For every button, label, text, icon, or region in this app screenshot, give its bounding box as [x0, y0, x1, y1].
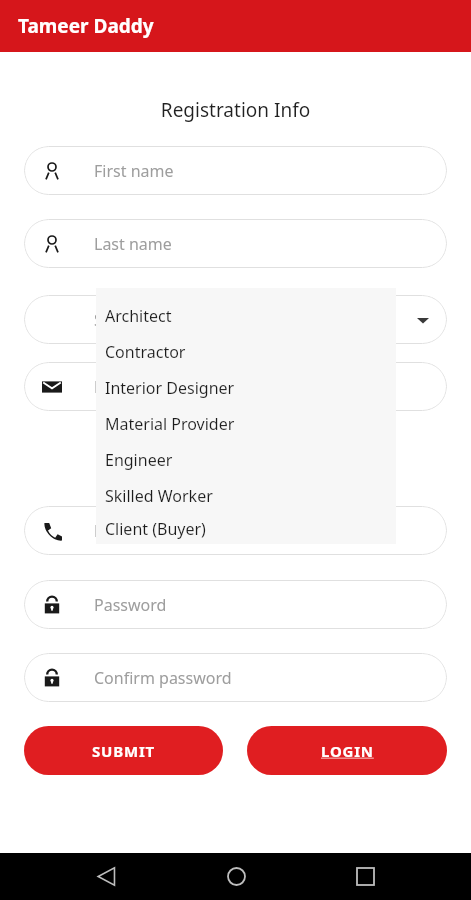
button[interactable]: SUBMIT [24, 726, 223, 775]
button[interactable]: Client (Buyer) [96, 514, 396, 544]
staticText: Phone [94, 520, 429, 542]
button[interactable]: Architect [96, 298, 396, 334]
button[interactable]: Email [24, 362, 447, 411]
staticText: Skilled Worker [105, 485, 213, 507]
staticText: Contractor [105, 341, 186, 363]
staticText: Architect [105, 305, 172, 327]
button[interactable]: Confirm password [24, 653, 447, 702]
button[interactable]: Home [212, 853, 260, 900]
button[interactable]: Back [82, 853, 130, 900]
button[interactable]: Material Provider [96, 406, 396, 442]
staticText: SUBMIT [92, 741, 156, 761]
staticText: Material Provider [105, 413, 235, 435]
button[interactable]: Contractor [96, 334, 396, 370]
staticText: LOGIN [321, 741, 374, 761]
staticText: Engineer [105, 449, 173, 471]
button[interactable]: First name [24, 146, 447, 195]
staticText: Tameer Daddy [18, 13, 154, 39]
staticText: Client (Buyer) [105, 518, 206, 540]
staticText: Email [94, 376, 429, 398]
staticText: First name [94, 160, 429, 182]
button[interactable]: Architect [96, 288, 396, 544]
staticText: Registration Info [24, 97, 447, 123]
button[interactable]: Select type [24, 295, 447, 344]
button[interactable]: Interior Designer [96, 370, 396, 406]
staticText: Confirm password [94, 667, 429, 689]
staticText: Interior Designer [105, 377, 235, 399]
button[interactable]: LOGIN [247, 726, 447, 775]
button[interactable]: Phone [24, 506, 447, 555]
staticText: Select type [94, 309, 417, 331]
staticText: Last name [94, 233, 429, 255]
button[interactable]: Last name [24, 219, 447, 268]
button[interactable]: Engineer [96, 442, 396, 478]
button[interactable]: Skilled Worker [96, 478, 396, 514]
staticText: Password [94, 594, 429, 616]
button[interactable]: Password [24, 580, 447, 629]
button[interactable]: Recent apps [341, 853, 389, 900]
